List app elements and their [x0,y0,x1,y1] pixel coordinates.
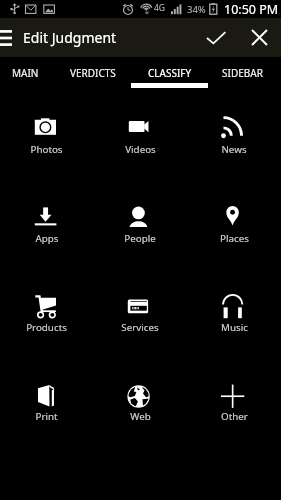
button[interactable]: Print [0,374,93,463]
button[interactable]: Navigation menu [0,18,20,57]
button[interactable]: Music [187,285,281,374]
button[interactable]: Photos [0,107,93,196]
staticText: Apps [35,232,59,245]
button[interactable]: Videos [93,107,187,196]
staticText: Other [221,410,248,423]
staticText: Web [130,410,151,423]
staticText: SIDEBAR [222,66,263,80]
staticText: Print [35,410,58,423]
staticText: Music [221,321,248,334]
button[interactable]: MAIN [0,57,54,88]
button[interactable]: SIDEBAR [208,57,277,88]
button[interactable]: Close [243,18,275,57]
staticText: Products [26,321,67,334]
staticText: Edit Judgment [23,28,117,47]
button[interactable]: Places [187,196,281,285]
button[interactable]: Save [197,18,235,57]
staticText: 4G [154,2,166,14]
staticText: CLASSIFY [148,66,192,80]
staticText: News [221,143,247,156]
staticText: 10:50 PM [224,1,279,18]
button[interactable]: Services [93,285,187,374]
button[interactable]: News [187,107,281,196]
staticText: 34% [187,3,206,16]
staticText: Videos [125,143,156,156]
button[interactable]: Apps [0,196,93,285]
staticText: People [124,232,156,245]
button[interactable]: Products [0,285,93,374]
staticText: Places [220,232,249,245]
staticText: Services [121,321,159,334]
staticText: MAIN [12,66,39,80]
button[interactable]: Other [187,374,281,463]
staticText: VERDICTS [70,66,116,80]
button[interactable]: CLASSIFY [131,57,208,88]
button[interactable]: People [93,196,187,285]
staticText: Photos [30,143,63,156]
button[interactable]: Web [93,374,187,463]
button[interactable]: VERDICTS [54,57,131,88]
